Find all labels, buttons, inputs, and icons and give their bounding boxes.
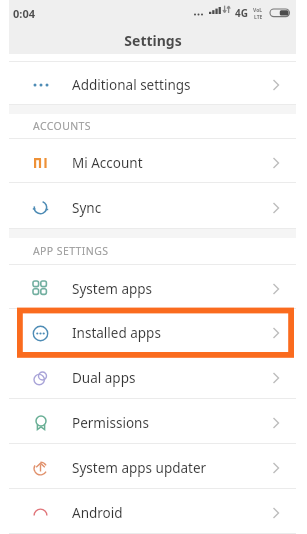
button[interactable]: Permissions (9, 399, 296, 443)
button[interactable]: System apps (9, 265, 296, 308)
staticText: ACCOUNTS (33, 119, 92, 133)
staticText: 4G (235, 6, 248, 20)
button[interactable]: Dual apps (9, 354, 296, 398)
staticText: System apps updater (72, 459, 256, 477)
staticText: Permissions (72, 414, 256, 432)
staticText: Additional settings (72, 76, 256, 94)
staticText: 0:04 (13, 6, 35, 21)
staticText: Mi Account (72, 154, 256, 172)
button[interactable]: Installed apps (9, 309, 296, 353)
button[interactable]: Mi Account (9, 139, 296, 182)
button[interactable]: Sync (9, 183, 296, 228)
staticText: APP SETTINGS (33, 244, 109, 258)
staticText: Installed apps (72, 324, 256, 342)
staticText: System apps (72, 280, 256, 298)
staticText: Android (72, 504, 256, 522)
staticText: LTE (254, 14, 263, 21)
button[interactable]: System apps updater (9, 444, 296, 488)
button[interactable]: Additional settings (9, 62, 296, 104)
staticText: Sync (72, 199, 256, 217)
staticText: Settings (124, 31, 182, 50)
button[interactable]: Android (9, 489, 296, 533)
staticText: Dual apps (72, 369, 256, 387)
staticText: VoL (253, 7, 263, 14)
